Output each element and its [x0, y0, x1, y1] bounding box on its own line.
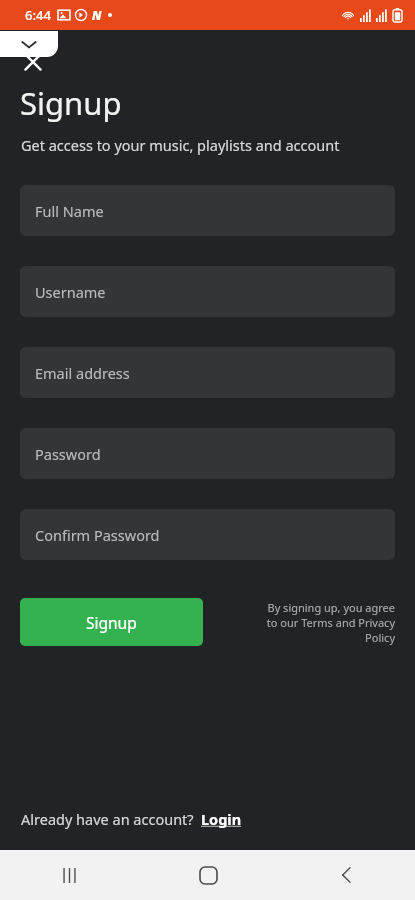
staticText: Username [35, 282, 106, 302]
staticText: By signing up, you agree to our Terms an… [257, 600, 395, 645]
button[interactable]: Username [20, 266, 395, 317]
staticText: 6:44 [25, 6, 51, 24]
staticText: N [92, 7, 102, 23]
button[interactable]: Signup [20, 598, 203, 646]
button[interactable]: Confirm Password [20, 509, 395, 560]
staticText: Full Name [35, 201, 104, 221]
button[interactable]: Home [139, 850, 277, 900]
staticText: Signup [20, 82, 122, 124]
staticText: Already have an account? [21, 809, 194, 829]
button[interactable]: Password [20, 428, 395, 479]
button[interactable]: Collapse [0, 31, 58, 57]
staticText: Signup [86, 612, 137, 633]
button[interactable]: Login [201, 809, 242, 829]
staticText: Confirm Password [35, 525, 160, 545]
button[interactable]: Close [15, 44, 51, 80]
button[interactable]: Email address [20, 347, 395, 398]
staticText: Get access to your music, playlists and … [21, 135, 340, 155]
button[interactable]: Back [277, 850, 415, 900]
staticText: Email address [35, 363, 130, 383]
button[interactable]: Full Name [20, 185, 395, 236]
staticText: Password [35, 444, 101, 464]
staticText: Login [201, 809, 242, 829]
button[interactable]: Recents [0, 850, 139, 900]
